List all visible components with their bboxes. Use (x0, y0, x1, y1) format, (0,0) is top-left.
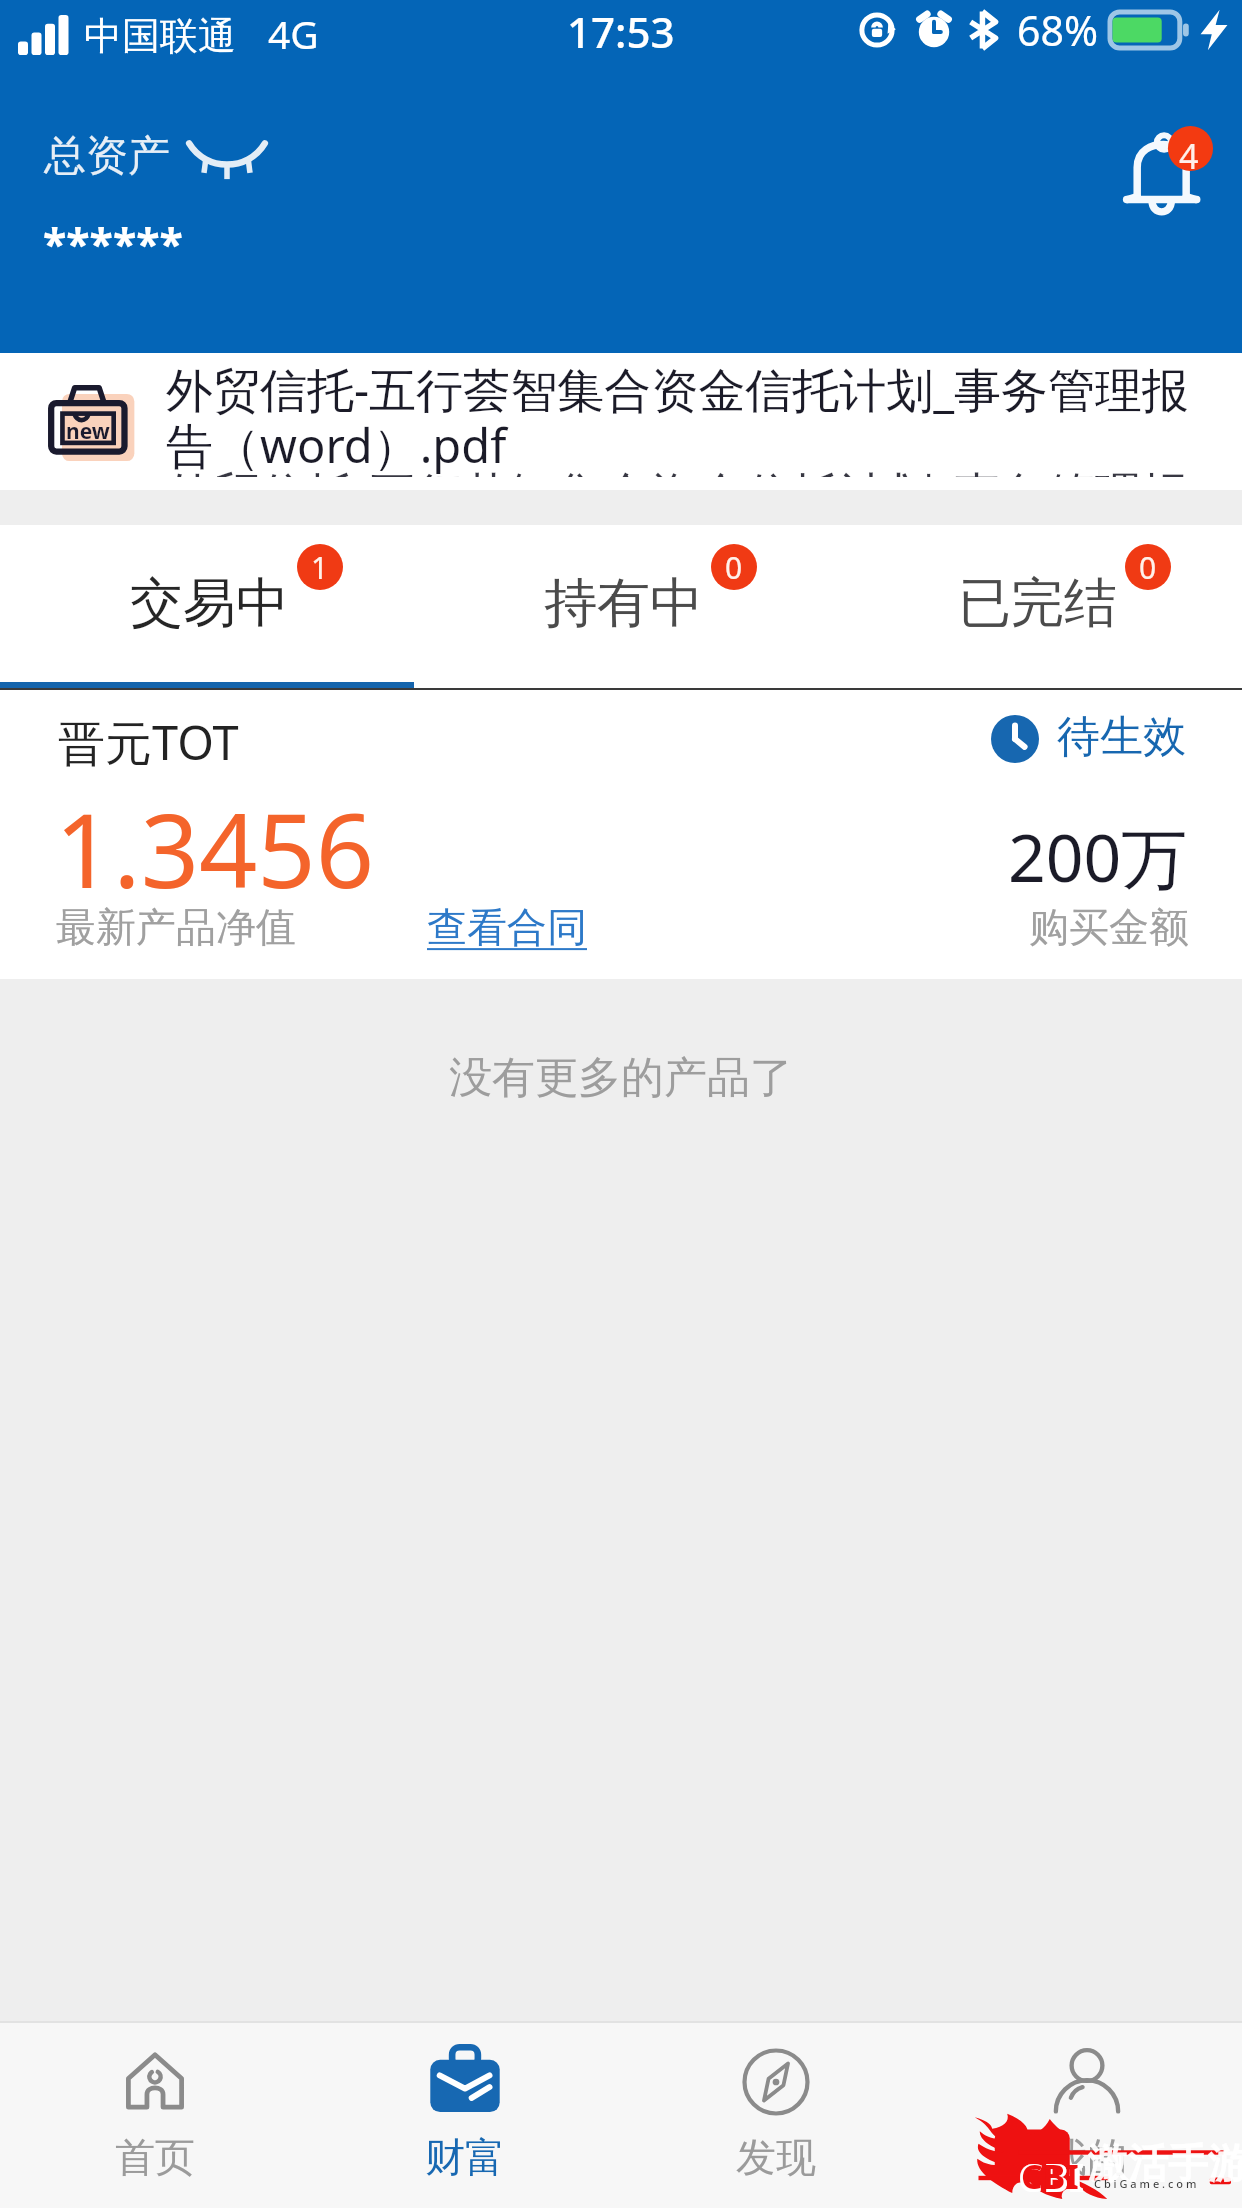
staticText: 外贸信托-五行荟智集合资金信托计划_事务管理报告（word）.pdf (166, 357, 1211, 477)
button[interactable]: 财富 (310, 2023, 620, 2208)
staticText: 发现 (736, 2132, 816, 2182)
button[interactable]: 持有中 (414, 525, 828, 682)
button[interactable]: 晋元TOT (0, 690, 1242, 979)
staticText: 200万 (1008, 811, 1188, 901)
staticText: new (66, 417, 110, 446)
button[interactable]: Toggle balance visibility (188, 140, 266, 174)
staticText: 0 (1139, 547, 1157, 588)
button[interactable]: 发现 (620, 2023, 931, 2208)
staticText: 4 (1179, 133, 1199, 179)
staticText: 待生效 (1057, 710, 1186, 764)
button[interactable]: 首页 (0, 2023, 310, 2208)
staticText: 17:53 (567, 3, 675, 60)
staticText: 外贸信托-五行荟智集合资金信托计划_事务管理报 (166, 470, 1190, 477)
staticText: 财富 (425, 2132, 505, 2182)
staticText: 68% (1017, 2, 1098, 58)
staticText: 持有中 (544, 570, 703, 637)
staticText: 1 (311, 547, 329, 588)
staticText: 4G (268, 7, 319, 60)
staticText: 激活手游 (1088, 2138, 1242, 2188)
staticText: 总资产 (44, 130, 170, 183)
staticText: 交易中 (130, 570, 289, 637)
staticText: 查看合同 (427, 902, 587, 952)
button[interactable]: Notifications (1118, 122, 1214, 222)
button[interactable]: new (0, 353, 1242, 490)
staticText: 已完结 (958, 570, 1117, 637)
staticText: 最新产品净值 (56, 902, 296, 952)
staticText: 1.3456 (55, 779, 375, 918)
button[interactable]: 我的 (931, 2023, 1242, 2208)
staticText: 我的 (1047, 2132, 1127, 2182)
staticText: 0 (725, 547, 743, 588)
staticText: 首页 (115, 2132, 195, 2182)
staticText: CbiGame.com (1094, 2176, 1200, 2191)
staticText: ****** (43, 214, 183, 273)
staticText: 没有更多的产品了 (449, 1051, 793, 1105)
staticText: 中国联通 (84, 12, 236, 60)
staticText: 晋元TOT (58, 710, 239, 774)
staticText: 购买金额 (1029, 902, 1189, 952)
button[interactable]: 交易中 (0, 525, 414, 682)
staticText: CBI (1021, 2153, 1079, 2199)
button[interactable]: 查看合同 (427, 902, 587, 952)
staticText: CBI (1018, 2150, 1085, 2203)
button[interactable]: 已完结 (828, 525, 1242, 682)
